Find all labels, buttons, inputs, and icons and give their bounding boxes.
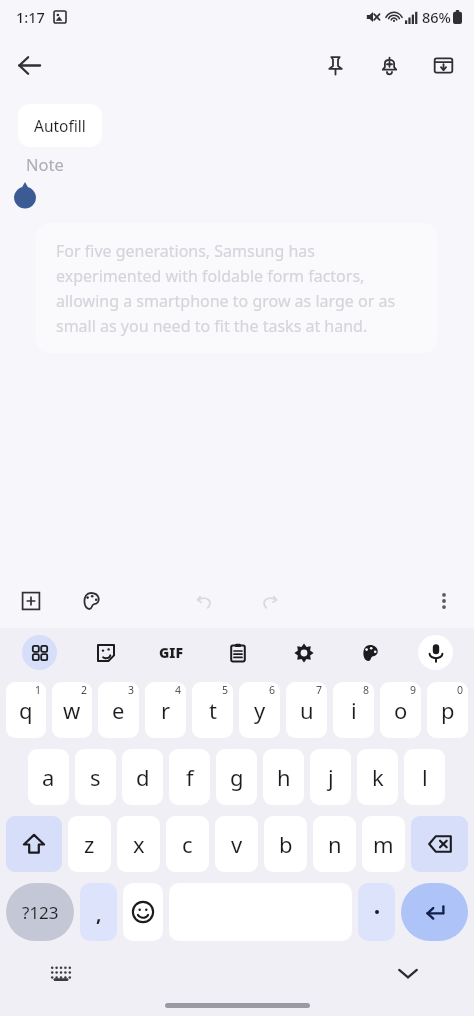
button[interactable]: For five generations, Samsung has experi… [36, 223, 438, 353]
button[interactable]: Enter [401, 883, 468, 941]
button[interactable]: Backspace [411, 816, 468, 872]
button[interactable]: Redo [250, 582, 288, 620]
button[interactable]: Clipboard [204, 628, 270, 676]
staticText: Note [26, 153, 64, 175]
button[interactable]: Save to [422, 44, 464, 86]
button[interactable]: w [52, 682, 92, 738]
staticText: q [19, 695, 33, 725]
staticText: x [133, 829, 145, 859]
staticText: u [300, 695, 314, 725]
button[interactable]: Undo [186, 582, 224, 620]
staticText: r [161, 695, 171, 725]
button[interactable]: a [28, 749, 69, 805]
button[interactable] [358, 883, 395, 941]
button[interactable]: Keyboard modes [6, 628, 72, 676]
button[interactable]: GIF [138, 628, 204, 676]
button[interactable]: t [192, 682, 233, 738]
button[interactable]: , [80, 883, 117, 941]
staticText: 1 [35, 683, 42, 697]
button[interactable]: Voice input [402, 628, 468, 676]
button[interactable]: ?123 [6, 883, 74, 941]
staticText: e [112, 695, 125, 725]
button[interactable]: y [239, 682, 280, 738]
staticText: t [209, 695, 217, 725]
staticText: ?123 [22, 901, 59, 924]
button[interactable]: s [75, 749, 116, 805]
button[interactable]: l [404, 749, 445, 805]
button[interactable]: Shift [6, 816, 62, 872]
button[interactable]: z [68, 816, 111, 872]
button[interactable]: g [216, 749, 257, 805]
staticText: b [279, 829, 293, 859]
button[interactable]: Add reminder [368, 44, 410, 86]
staticText: 4 [175, 683, 182, 697]
button[interactable]: Settings [270, 628, 336, 676]
staticText: w [63, 695, 81, 725]
button[interactable]: Back [6, 42, 52, 88]
staticText: 7 [316, 683, 323, 697]
staticText: o [394, 695, 408, 725]
staticText: a [42, 762, 55, 792]
button[interactable]: b [264, 816, 307, 872]
button[interactable]: r [145, 682, 186, 738]
button[interactable]: Hide keyboard [390, 955, 426, 991]
staticText: c [182, 829, 193, 859]
staticText: y [254, 695, 266, 725]
staticText: n [328, 829, 342, 859]
button[interactable]: e [98, 682, 139, 738]
button[interactable]: Drawing palette [72, 582, 110, 620]
staticText: , [96, 901, 102, 927]
button[interactable]: j [310, 749, 351, 805]
button[interactable]: c [166, 816, 209, 872]
button[interactable]: p [427, 682, 468, 738]
button[interactable]: f [169, 749, 210, 805]
staticText: 8 [363, 683, 370, 697]
staticText: 6 [269, 683, 276, 697]
staticText: 1:17 [16, 7, 45, 27]
button[interactable]: Emoji [123, 883, 163, 941]
button[interactable]: k [357, 749, 398, 805]
staticText: d [136, 762, 150, 792]
button[interactable]: i [333, 682, 374, 738]
button[interactable]: n [313, 816, 356, 872]
staticText: s [90, 762, 101, 792]
button[interactable]: Insert [12, 582, 50, 620]
staticText: p [441, 695, 455, 725]
staticText: 2 [81, 683, 88, 697]
staticText: 9 [410, 683, 417, 697]
staticText: f [186, 762, 194, 792]
button[interactable]: h [263, 749, 304, 805]
staticText: m [373, 829, 394, 859]
button[interactable]: u [286, 682, 327, 738]
button[interactable]: Theme [336, 628, 402, 676]
staticText: j [328, 762, 334, 792]
button[interactable]: d [122, 749, 163, 805]
button[interactable]: Switch keyboard [44, 956, 78, 990]
staticText: GIF [159, 643, 184, 662]
button[interactable]: Autofill [18, 104, 102, 147]
staticText: 86% [422, 7, 451, 27]
staticText: For five generations, Samsung has experi… [56, 240, 418, 336]
staticText: h [277, 762, 291, 792]
button[interactable]: q [6, 682, 46, 738]
button[interactable]: More options [424, 581, 464, 621]
staticText: 5 [222, 683, 229, 697]
button[interactable]: Stickers [72, 628, 138, 676]
button[interactable]: v [215, 816, 258, 872]
button[interactable]: o [380, 682, 421, 738]
staticText: 3 [128, 683, 135, 697]
staticText: 0 [457, 683, 464, 697]
button[interactable]: m [362, 816, 405, 872]
staticText: k [372, 762, 384, 792]
staticText: l [422, 762, 428, 792]
staticText: z [84, 829, 95, 859]
staticText: Autofill [34, 115, 86, 136]
staticText: i [351, 695, 357, 725]
button[interactable]: Pin [314, 44, 356, 86]
staticText: v [231, 829, 243, 859]
button[interactable]: x [117, 816, 160, 872]
staticText: g [230, 762, 244, 792]
